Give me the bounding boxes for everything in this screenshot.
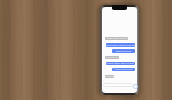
button[interactable]: Send xyxy=(133,84,138,89)
staticText: Dolore magna aliqua ut enim ad min xyxy=(106,62,135,65)
button[interactable]: Lorem ipsum dolor sit ametes xyxy=(105,37,128,40)
button[interactable]: Eiusmod tempor incididunt ut lab xyxy=(112,49,135,53)
button[interactable] xyxy=(103,83,133,87)
button[interactable]: Ut labore et do xyxy=(105,56,119,59)
button[interactable]: Minim veniam quis nostrud exer xyxy=(112,68,135,71)
staticText: Minim veniam quis nostrud exer xyxy=(112,68,135,71)
button[interactable]: Dolore magna aliqua ut enim ad min xyxy=(106,62,135,65)
staticText: Ut labore et do xyxy=(105,56,119,59)
button[interactable]: Consectetur adipiscing elit sed do eius xyxy=(106,43,135,47)
staticText: Lorem ipsum dolor sit ametes xyxy=(105,37,128,40)
staticText: Consectetur adipiscing elit sed do eius xyxy=(106,44,135,47)
staticText: Exercitat xyxy=(105,75,114,78)
staticText: Eiusmod tempor incididunt ut lab xyxy=(112,50,135,53)
button[interactable]: Exercitat xyxy=(105,75,114,78)
